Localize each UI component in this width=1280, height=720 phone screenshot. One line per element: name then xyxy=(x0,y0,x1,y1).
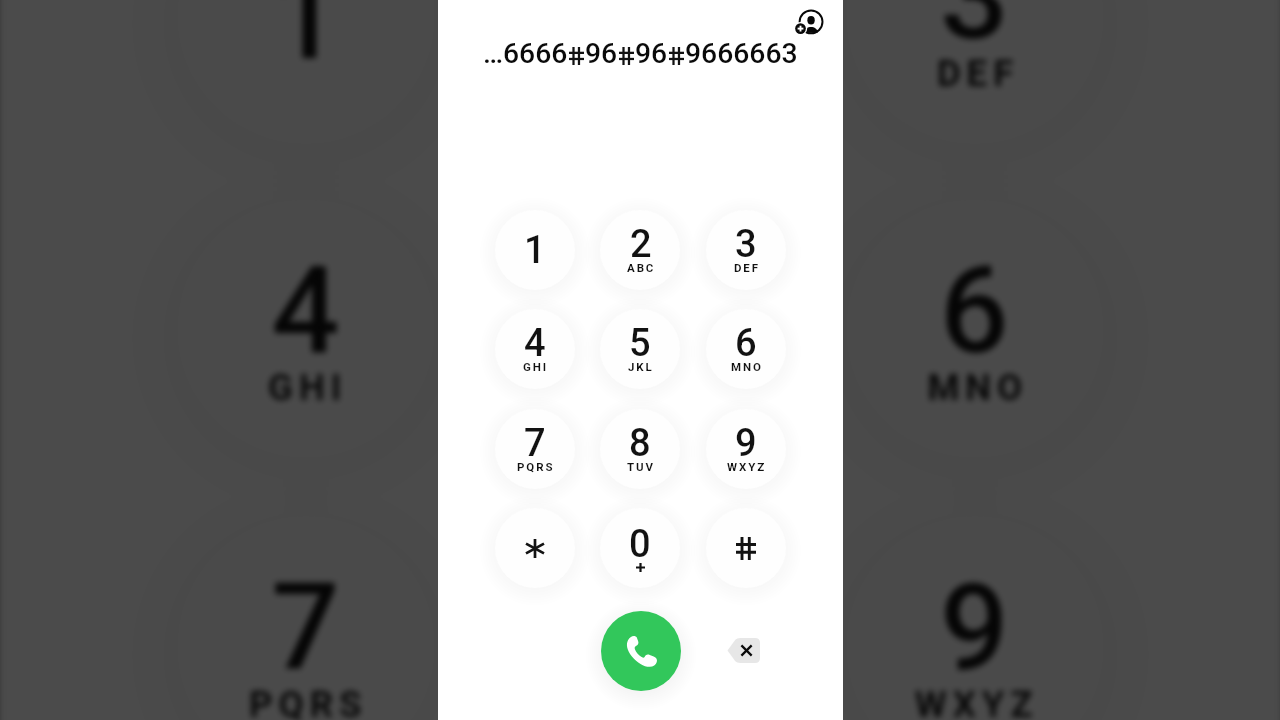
staticText: PQRS xyxy=(517,460,555,473)
button[interactable] xyxy=(495,508,575,588)
staticText: 2 xyxy=(607,0,677,70)
staticText: TUV xyxy=(598,682,686,720)
staticText: 3 xyxy=(940,0,1010,70)
button[interactable]: 5 xyxy=(512,203,766,457)
button[interactable]: 3 xyxy=(848,0,1102,143)
staticText: DEF xyxy=(937,51,1019,92)
staticText: 2 xyxy=(630,222,652,267)
button[interactable]: 6 xyxy=(848,203,1102,457)
staticText: 0 xyxy=(629,522,651,567)
button[interactable]: Call xyxy=(601,611,681,691)
button[interactable]: 8 xyxy=(512,520,766,720)
staticText: 4 xyxy=(271,241,341,384)
staticText: 3 xyxy=(735,222,757,267)
staticText: 6 xyxy=(735,321,757,366)
button[interactable]: Backspace xyxy=(717,626,767,674)
button[interactable]: 4 xyxy=(495,309,575,389)
staticText: PQRS xyxy=(249,682,369,720)
button[interactable] xyxy=(706,508,786,588)
staticText: MNO xyxy=(731,360,763,373)
staticText: ABC xyxy=(598,51,690,92)
staticText: 8 xyxy=(629,421,651,466)
staticText: GHI xyxy=(523,360,549,373)
button[interactable]: 5 xyxy=(600,309,680,389)
staticText: MNO xyxy=(927,365,1029,406)
staticText: 6 xyxy=(940,241,1010,384)
staticText: 1 xyxy=(271,0,341,89)
button[interactable]: 9 xyxy=(848,520,1102,720)
staticText: DEF xyxy=(734,261,760,274)
staticText: GHI xyxy=(268,365,350,406)
button[interactable]: 8 xyxy=(600,409,680,489)
button[interactable]: 7 xyxy=(495,409,575,489)
button[interactable]: 9 xyxy=(706,409,786,489)
staticText: 96 xyxy=(635,37,668,70)
staticText: ABC xyxy=(627,261,656,274)
button[interactable]: 3 xyxy=(706,210,786,290)
staticText: WXYZ xyxy=(915,682,1041,720)
staticText: 8 xyxy=(604,558,674,701)
staticText: 96 xyxy=(585,37,618,70)
button[interactable]: 1 xyxy=(495,210,575,290)
button[interactable]: 2 xyxy=(512,0,766,143)
staticText: JKL xyxy=(601,365,683,406)
button[interactable]: Add contact xyxy=(788,4,828,44)
button[interactable]: 6 xyxy=(706,309,786,389)
staticText: 9666663 xyxy=(685,37,798,70)
staticText: WXYZ xyxy=(727,460,767,473)
staticText: 7 xyxy=(271,558,341,701)
staticText: 7 xyxy=(524,421,546,466)
staticText: JKL xyxy=(628,360,654,373)
button[interactable]: 1 xyxy=(179,0,433,143)
button[interactable]: 4 xyxy=(179,203,433,457)
button[interactable]: 0 xyxy=(600,508,680,588)
staticText: TUV xyxy=(627,460,655,473)
staticText: 9 xyxy=(735,421,757,466)
staticText: 5 xyxy=(604,241,674,384)
staticText: 9 xyxy=(940,558,1010,701)
staticText: 5 xyxy=(629,321,651,366)
button[interactable]: 7 xyxy=(179,520,433,720)
staticText: 4 xyxy=(524,321,546,366)
button[interactable]: 2 xyxy=(600,210,680,290)
staticText: …6666 xyxy=(483,37,568,70)
staticText: 1 xyxy=(524,228,546,273)
